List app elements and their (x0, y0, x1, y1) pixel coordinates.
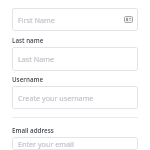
button[interactable]: Autofill contact (124, 15, 133, 24)
staticText: Create your username (18, 93, 94, 103)
staticText: Last Name (18, 54, 54, 64)
staticText: Username (12, 75, 44, 83)
staticText: First Name (18, 15, 55, 25)
button[interactable]: Last Name (12, 47, 138, 71)
button[interactable]: Create your username (12, 86, 138, 109)
staticText: Last name (12, 36, 44, 44)
button[interactable]: Enter your email (12, 137, 138, 150)
staticText: Enter your email (18, 139, 74, 149)
staticText: Email address (12, 126, 54, 134)
button[interactable]: First Name (12, 8, 138, 31)
